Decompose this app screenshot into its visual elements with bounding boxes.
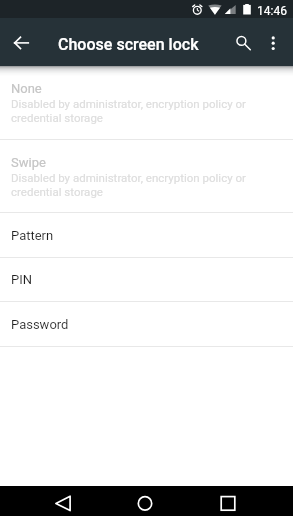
staticText: Disabled by administrator, encryption po… <box>11 171 279 199</box>
staticText: Choose screen lock <box>58 35 199 54</box>
button[interactable]: Password <box>0 302 293 346</box>
button[interactable]: More options <box>261 18 293 66</box>
staticText: Disabled by administrator, encryption po… <box>11 97 279 125</box>
button[interactable]: Swipe <box>0 140 293 212</box>
button[interactable]: Navigate up <box>0 18 42 66</box>
staticText: PIN <box>11 272 33 287</box>
button[interactable]: PIN <box>0 258 293 301</box>
button[interactable]: Search <box>222 18 261 66</box>
button[interactable]: Back <box>36 486 90 516</box>
button[interactable]: Home <box>118 486 172 516</box>
staticText: Password <box>11 317 69 332</box>
staticText: Swipe <box>11 155 46 170</box>
staticText: 14:46 <box>257 4 287 18</box>
button[interactable]: None <box>0 66 293 139</box>
staticText: None <box>11 81 42 96</box>
staticText: Pattern <box>11 228 54 243</box>
button[interactable]: Recent apps <box>201 486 255 516</box>
button[interactable]: Pattern <box>0 213 293 257</box>
